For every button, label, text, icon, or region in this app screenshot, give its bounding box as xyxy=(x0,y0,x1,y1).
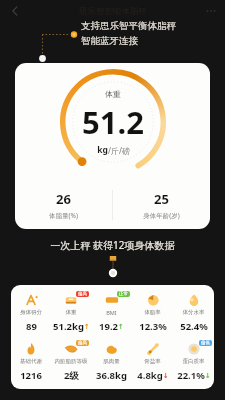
button[interactable]: 肌肉量 xyxy=(91,341,132,382)
staticText: 偏高 xyxy=(78,291,87,297)
staticText: ↑ xyxy=(118,323,124,331)
button[interactable]: 身体得分 xyxy=(11,292,214,382)
staticText: 内脏脂肪等级 xyxy=(51,358,91,365)
staticText: 体重 xyxy=(105,89,121,99)
staticText: 4.8kg xyxy=(137,369,163,382)
button[interactable]: 26 xyxy=(15,181,112,229)
staticText: 身体年龄(岁) xyxy=(143,211,180,220)
staticText: 体重 xyxy=(51,309,91,316)
staticText: 体脂量(%) xyxy=(49,211,78,220)
staticText: 26 xyxy=(56,190,71,208)
staticText: 19.2 xyxy=(99,320,118,333)
staticText: 89 xyxy=(26,320,37,333)
staticText: 偏高 xyxy=(78,340,87,346)
staticText: 25 xyxy=(154,190,169,208)
staticText: 肌肉量 xyxy=(91,358,132,365)
staticText: 体分水率 xyxy=(173,309,214,316)
button[interactable]: More xyxy=(203,3,219,19)
button[interactable]: 偏高 xyxy=(51,341,91,382)
staticText: 支持思乐智平衡体脂秤 xyxy=(81,20,176,32)
staticText: 36.8kg xyxy=(96,369,127,382)
staticText: 正常 xyxy=(119,291,128,297)
staticText: 一次上秤 获得12项身体数据 xyxy=(50,238,175,252)
staticText: 基础代谢 xyxy=(11,358,51,365)
staticText: 2级 xyxy=(64,369,79,382)
staticText: /斤/磅 xyxy=(108,145,130,156)
button[interactable]: 体分水率 xyxy=(173,292,214,333)
button[interactable]: 偏高 xyxy=(51,292,91,333)
staticText: ↓ xyxy=(205,372,211,380)
button[interactable]: 正常 xyxy=(91,292,132,333)
staticText: 51.2 xyxy=(82,101,144,143)
button[interactable]: 25 xyxy=(113,181,210,229)
button[interactable]: 身体得分 xyxy=(11,292,51,333)
button[interactable]: 体脂率 xyxy=(132,292,173,333)
staticText: 12.3% xyxy=(139,320,167,333)
staticText: kg xyxy=(97,144,108,156)
staticText: 体脂率 xyxy=(132,309,173,316)
staticText: 51.2kg xyxy=(53,320,84,333)
button[interactable]: Back xyxy=(6,2,24,20)
staticText: BMI xyxy=(91,309,132,316)
button[interactable]: 基础代谢 xyxy=(11,341,51,382)
button[interactable]: 骨盐率 xyxy=(132,341,173,382)
button[interactable]: 体重 xyxy=(15,63,210,229)
staticText: 1216 xyxy=(20,369,42,382)
staticText: 思乐智智能体脂秤 xyxy=(79,6,147,17)
staticText: 22.1% xyxy=(177,369,205,382)
staticText: 偏低 xyxy=(201,340,210,346)
staticText: ↓ xyxy=(163,372,169,380)
staticText: 骨盐率 xyxy=(132,358,173,365)
staticText: 身体得分 xyxy=(11,309,51,316)
staticText: 52.4% xyxy=(180,320,208,333)
staticText: 智能蓝牙连接 xyxy=(81,35,138,47)
staticText: 蛋白质率 xyxy=(173,358,214,365)
button[interactable]: 偏低 xyxy=(173,341,214,382)
staticText: ↑ xyxy=(84,323,90,331)
